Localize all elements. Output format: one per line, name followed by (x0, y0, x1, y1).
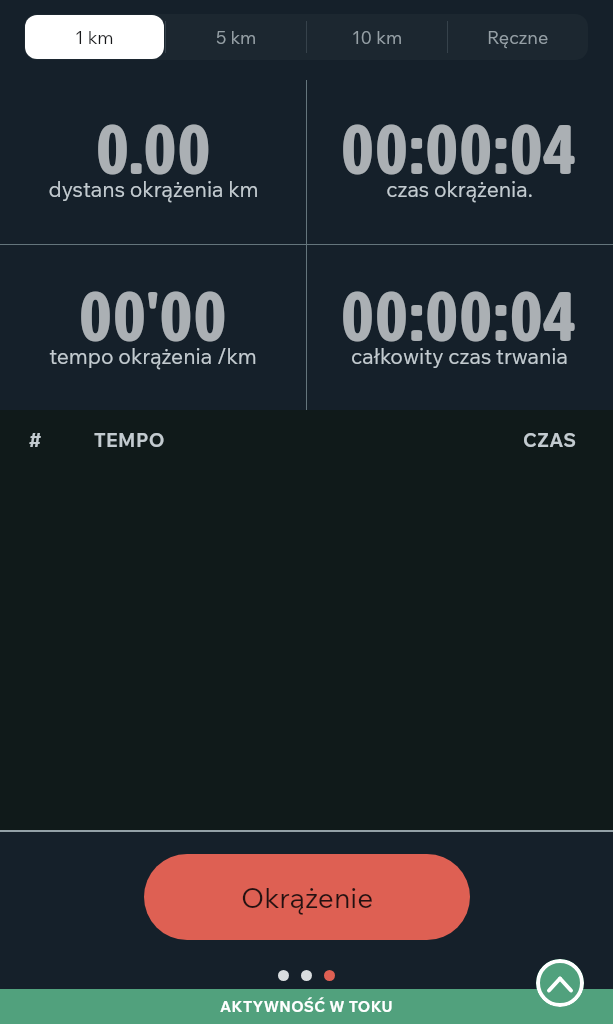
staticText: AKTYWNOŚĆ W TOKU (220, 997, 393, 1016)
staticText: 00'00 (79, 276, 228, 356)
staticText: 00:00:04 (341, 276, 578, 356)
staticText: Okrążenie (241, 880, 374, 915)
staticText: 5 km (216, 26, 257, 49)
button[interactable]: 5 km (167, 15, 305, 59)
staticText: 00:00:04 (341, 109, 578, 189)
staticText: czas okrążenia. (386, 176, 533, 202)
staticText: całkowity czas trwania (351, 343, 568, 369)
staticText: CZAS (523, 428, 577, 452)
staticText: 1 km (75, 26, 114, 49)
staticText: # (29, 428, 42, 452)
staticText: tempo okrążenia /km (49, 343, 257, 369)
button[interactable]: Okrążenie (144, 854, 470, 940)
button[interactable]: Rozwiń panel (536, 959, 584, 1007)
staticText: 10 km (352, 26, 403, 49)
staticText: TEMPO (94, 428, 165, 452)
staticText: dystans okrążenia km (48, 176, 259, 202)
button[interactable]: Ręczne (449, 15, 587, 59)
button[interactable]: 1 km (25, 15, 164, 59)
button[interactable]: 10 km (308, 15, 446, 59)
staticText: 0.00 (96, 109, 212, 189)
staticText: Ręczne (487, 26, 549, 49)
